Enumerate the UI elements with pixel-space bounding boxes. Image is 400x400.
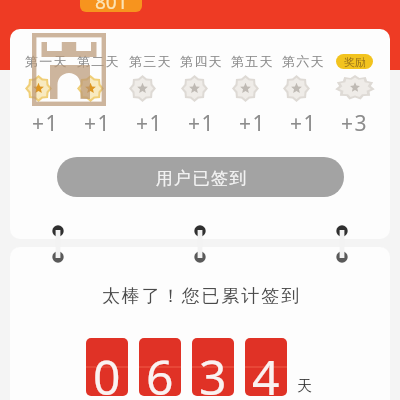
- staticText: 第四天: [180, 53, 223, 69]
- staticText: 第三天: [129, 53, 172, 69]
- button[interactable]: 第五天: [227, 52, 278, 138]
- staticText: 第五天: [231, 53, 274, 69]
- staticText: 奖励: [344, 55, 366, 69]
- staticText: 第二天: [77, 53, 120, 69]
- button[interactable]: 第四天: [176, 52, 227, 138]
- button[interactable]: 第一天: [20, 52, 72, 138]
- staticText: 6: [146, 344, 174, 396]
- staticText: 0: [93, 344, 121, 396]
- staticText: 4: [252, 344, 280, 396]
- button[interactable]: 奖励: [329, 52, 380, 138]
- staticText: +1: [188, 109, 216, 138]
- staticText: 3: [199, 344, 227, 396]
- staticText: +1: [290, 109, 318, 138]
- button[interactable]: 第六天: [278, 52, 329, 138]
- staticText: +1: [239, 109, 267, 138]
- button[interactable]: 第三天: [124, 52, 176, 138]
- staticText: +1: [136, 109, 164, 138]
- staticText: +3: [341, 109, 369, 138]
- staticText: 801: [95, 0, 128, 12]
- staticText: +1: [84, 109, 112, 138]
- button[interactable]: 第二天: [72, 52, 124, 138]
- staticText: 天: [297, 377, 312, 396]
- button[interactable]: 801: [80, 0, 142, 12]
- staticText: 太棒了！您已累计签到: [101, 285, 300, 308]
- staticText: +1: [32, 109, 60, 138]
- staticText: 第一天: [25, 53, 68, 69]
- staticText: 第六天: [282, 53, 325, 69]
- button[interactable]: 用户已签到: [57, 157, 344, 197]
- staticText: 用户已签到: [155, 168, 247, 189]
